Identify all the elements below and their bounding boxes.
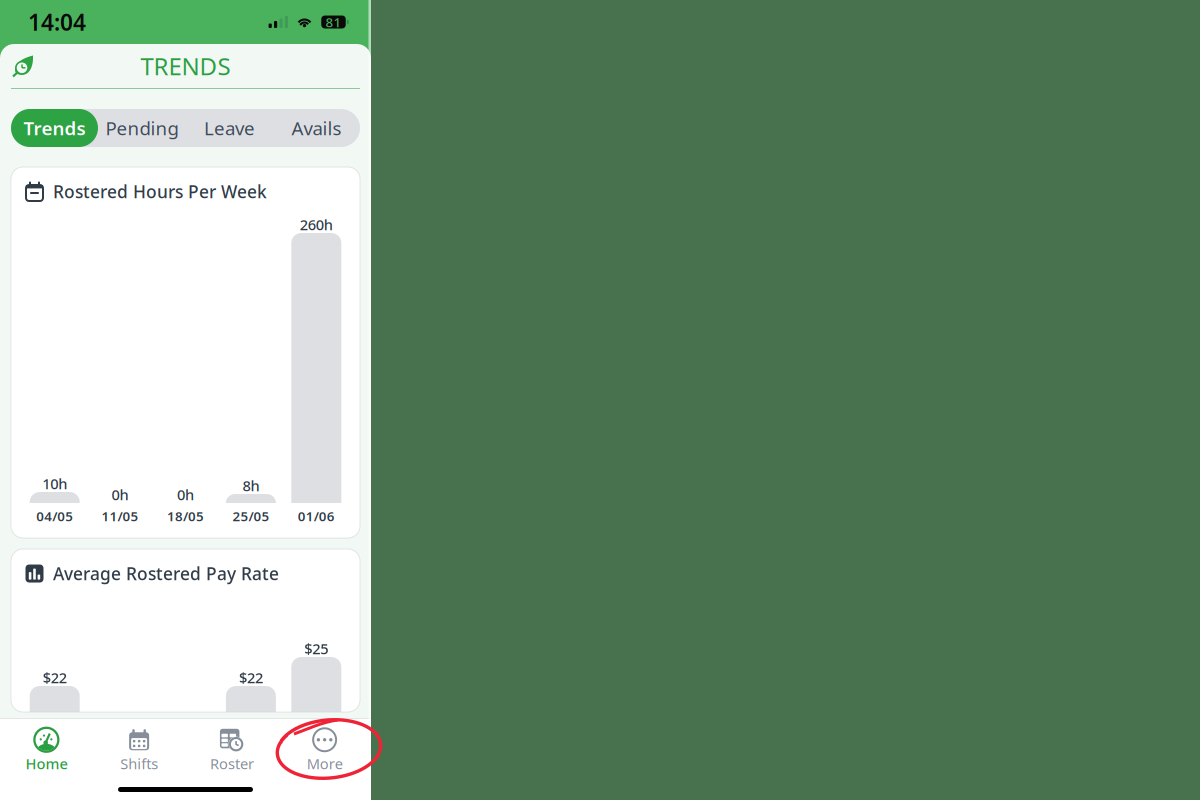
staticText: Shifts xyxy=(120,754,158,773)
staticText: TRENDS xyxy=(140,50,230,82)
staticText: Roster xyxy=(210,754,254,773)
staticText: Pending xyxy=(105,116,178,140)
staticText: 04/05 xyxy=(36,507,73,525)
button[interactable]: Pending xyxy=(98,109,186,147)
button[interactable]: Leave xyxy=(186,109,273,147)
button[interactable]: More xyxy=(278,726,371,774)
staticText: Rostered Hours Per Week xyxy=(53,180,267,203)
staticText: Avails xyxy=(291,116,341,140)
staticText: More xyxy=(307,754,343,773)
staticText: Leave xyxy=(204,116,255,140)
staticText: Average Rostered Pay Rate xyxy=(53,562,279,585)
staticText: 01/06 xyxy=(298,507,335,525)
staticText: $25 xyxy=(304,639,328,658)
button[interactable]: Home xyxy=(0,726,93,774)
staticText: Home xyxy=(25,754,67,773)
button[interactable]: Roster xyxy=(185,726,278,774)
staticText: 0h xyxy=(177,485,194,504)
staticText: 11/05 xyxy=(102,507,139,525)
button[interactable]: Trends xyxy=(11,109,98,147)
staticText: 260h xyxy=(300,215,333,234)
staticText: 0h xyxy=(112,485,129,504)
button[interactable]: Shifts xyxy=(93,726,186,774)
staticText: $22 xyxy=(43,668,67,687)
staticText: Trends xyxy=(23,116,85,140)
staticText: 14:04 xyxy=(28,7,86,37)
staticText: 18/05 xyxy=(167,507,204,525)
staticText: $22 xyxy=(239,668,263,687)
staticText: 25/05 xyxy=(232,507,269,525)
button[interactable]: Avails xyxy=(273,109,360,147)
staticText: 10h xyxy=(42,474,67,493)
staticText: 81 xyxy=(325,13,341,31)
staticText: 8h xyxy=(242,476,259,495)
button[interactable]: Home xyxy=(0,44,35,88)
